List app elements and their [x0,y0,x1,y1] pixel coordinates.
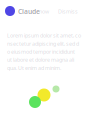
staticText: Lorem ipsum dolor sit amet, co [7,32,81,39]
staticText: Claude [18,7,40,16]
staticText: qua. Ut enim ad minim. [7,64,61,71]
staticText: nsectetur adipiscing elit, sed d [7,40,79,47]
staticText: ut labore et dolore magna ali [7,56,74,63]
button[interactable]: Dismiss [0,0,20,7]
staticText: Dismiss [58,8,78,15]
staticText: now [39,8,49,15]
staticText: o eiusmod tempor incididunt [7,48,75,55]
